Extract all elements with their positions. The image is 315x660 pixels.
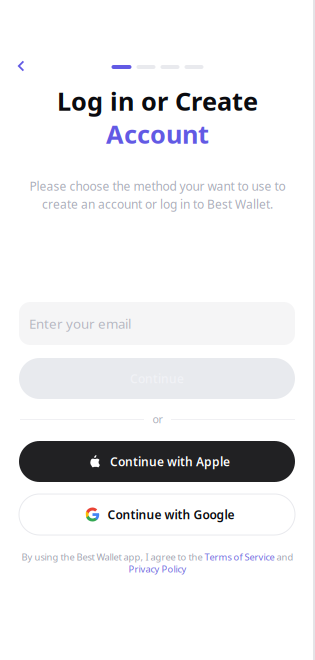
button[interactable]: Continue with Google [19, 494, 295, 535]
staticText: create an account or log in to Best Wall… [42, 196, 273, 212]
button[interactable]: Continue [19, 358, 295, 399]
button[interactable]: Continue with Apple [19, 441, 295, 482]
staticText: Privacy Policy [128, 563, 186, 575]
staticText: and [274, 551, 293, 563]
staticText: Terms of Service [204, 551, 274, 563]
button[interactable]: Privacy Policy [0, 563, 315, 575]
staticText: Log in or Create [57, 84, 258, 118]
staticText: Continue with Apple [110, 453, 230, 469]
staticText: Account [106, 117, 209, 151]
staticText: Enter your email [29, 315, 131, 332]
staticText: Please choose the method your want to us… [29, 178, 285, 194]
staticText: or [152, 412, 162, 426]
button[interactable]: Terms of Service [204, 551, 274, 563]
staticText: By using the Best Wallet app, I agree to… [21, 551, 204, 563]
button[interactable]: Back [6, 51, 36, 81]
staticText: Continue with Google [107, 506, 234, 522]
